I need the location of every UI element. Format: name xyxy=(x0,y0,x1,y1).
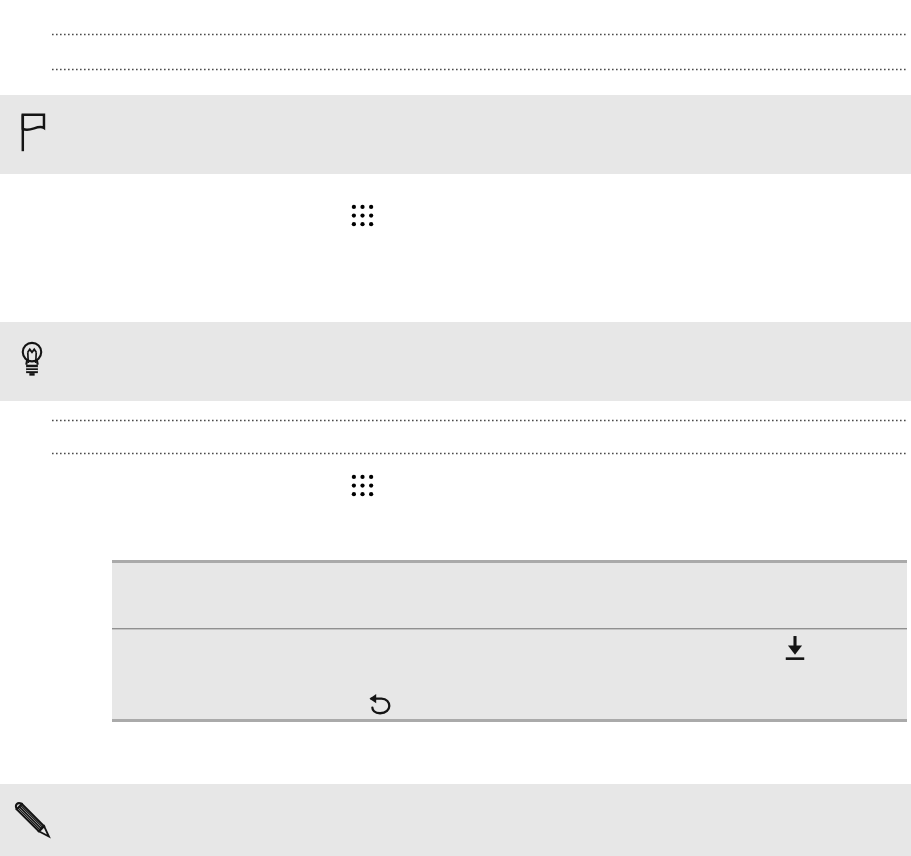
button[interactable]: Flag xyxy=(17,112,46,152)
button[interactable]: All apps xyxy=(350,203,375,228)
button[interactable]: Tip xyxy=(18,337,46,379)
button[interactable]: Edit xyxy=(13,801,50,838)
button[interactable] xyxy=(112,560,907,722)
button[interactable]: Back xyxy=(369,693,393,715)
button[interactable]: Download xyxy=(784,635,806,661)
button[interactable]: All apps xyxy=(350,473,375,498)
